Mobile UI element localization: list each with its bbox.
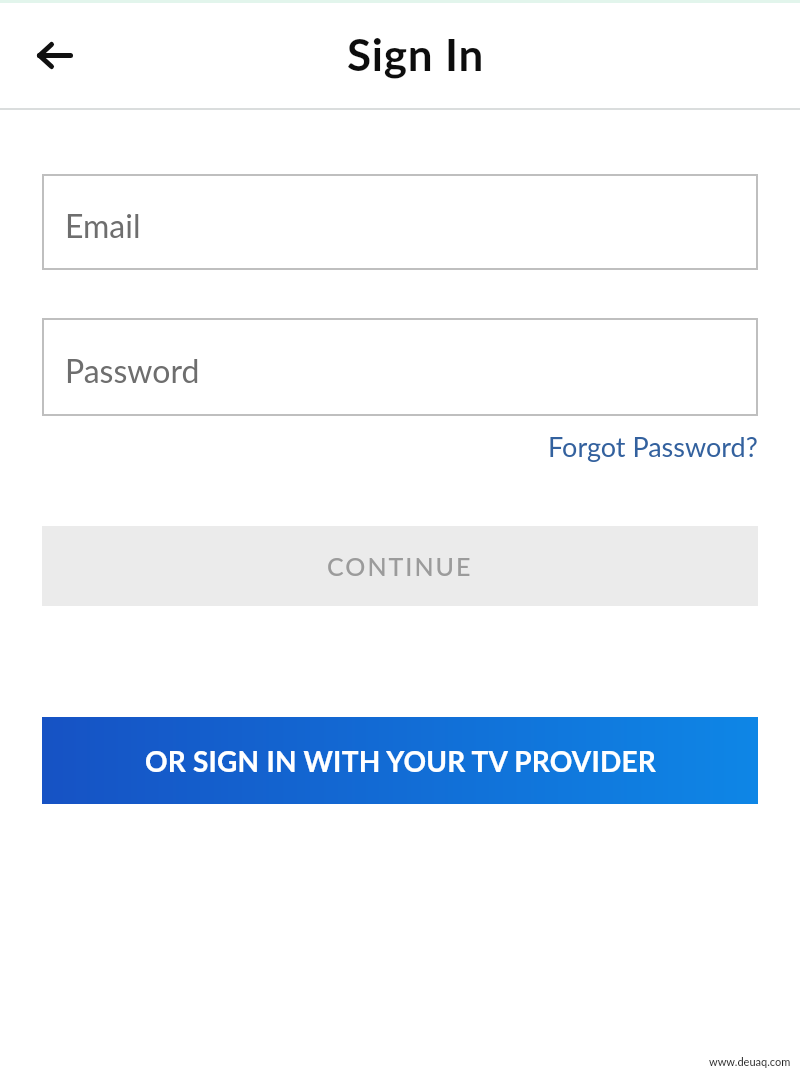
button[interactable]: Forgot Password? [548, 430, 758, 462]
staticText: OR SIGN IN WITH YOUR TV PROVIDER [145, 744, 656, 778]
button[interactable]: Email [42, 174, 758, 270]
button[interactable]: CONTINUE [42, 526, 758, 606]
button[interactable]: OR SIGN IN WITH YOUR TV PROVIDER [42, 717, 758, 804]
button[interactable]: Password [42, 318, 758, 416]
staticText: Password [65, 351, 200, 389]
staticText: Email [65, 206, 141, 244]
staticText: Forgot Password? [548, 430, 758, 462]
staticText: CONTINUE [327, 551, 473, 581]
staticText: Sign In [347, 28, 485, 81]
staticText: www.deuaq.com [709, 1055, 791, 1068]
button[interactable] [30, 30, 78, 78]
